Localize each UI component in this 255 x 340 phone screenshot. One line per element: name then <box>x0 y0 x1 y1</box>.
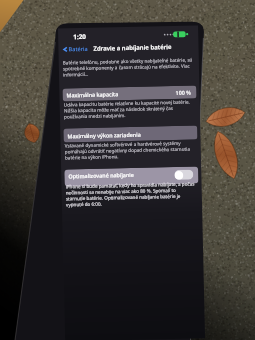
staticText: iPhone si bude pamätať, kedy ho spravidl… <box>65 180 196 207</box>
button[interactable]: Batéria <box>62 45 90 53</box>
button[interactable]: Maximálny výkon zariadenia <box>63 125 198 142</box>
staticText: Batérie telefónu, podobne ako všetky nab… <box>63 56 193 77</box>
staticText: Batéria <box>68 45 89 53</box>
staticText: Maximálna kapacita <box>66 90 118 98</box>
staticText: Udáva kapacitu batérie relatívne ku kapa… <box>64 98 194 119</box>
staticText: Vstavané dynamické softvérové a hardvéro… <box>65 139 195 160</box>
staticText: Maximálny výkon zariadenia <box>67 131 141 139</box>
staticText: 100 % <box>175 89 192 96</box>
staticText: 1:20 <box>73 32 86 41</box>
button[interactable]: Optimalizované nabíjanie <box>64 166 199 186</box>
button[interactable]: Maximálna kapacita <box>62 85 197 101</box>
button[interactable]: Optimalizované nabíjanie <box>174 170 193 180</box>
staticText: Optimalizované nabíjanie <box>68 171 134 179</box>
staticText: Zdravie a nabíjanie batérie <box>93 43 172 53</box>
